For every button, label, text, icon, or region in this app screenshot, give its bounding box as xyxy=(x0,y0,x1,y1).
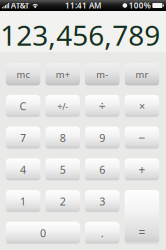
button[interactable]: ÷ xyxy=(85,95,120,117)
button[interactable]: 9 xyxy=(85,127,120,149)
staticText: × xyxy=(139,99,145,113)
staticText: 9 xyxy=(99,131,105,145)
staticText: + xyxy=(138,162,145,177)
staticText: 7 xyxy=(20,131,26,145)
staticText: m+ xyxy=(56,68,70,81)
staticText: +/- xyxy=(57,100,68,112)
staticText: 8 xyxy=(60,131,66,145)
staticText: 4 xyxy=(20,162,26,177)
staticText: 6 xyxy=(99,162,105,177)
button[interactable]: m- xyxy=(85,63,120,86)
button[interactable]: 6 xyxy=(85,158,120,181)
button[interactable]: C xyxy=(6,95,40,117)
staticText: . xyxy=(101,226,104,240)
staticText: m- xyxy=(96,68,108,81)
staticText: 0 xyxy=(40,226,46,240)
button[interactable]: 2 xyxy=(45,190,80,213)
staticText: 11:41 AM xyxy=(65,0,101,11)
staticText: = xyxy=(138,224,145,240)
staticText: AT&T xyxy=(11,0,30,11)
staticText: 2 xyxy=(60,194,66,208)
button[interactable]: 5 xyxy=(45,158,80,181)
staticText: mc xyxy=(17,68,30,81)
button[interactable]: mc xyxy=(6,63,40,86)
button[interactable]: + xyxy=(125,158,159,181)
staticText: ÷ xyxy=(99,98,106,114)
button[interactable]: 0 xyxy=(6,222,80,244)
staticText: 5 xyxy=(60,162,66,177)
staticText: − xyxy=(138,130,145,146)
staticText: 100% xyxy=(129,0,151,11)
button[interactable]: . xyxy=(85,222,120,244)
button[interactable]: − xyxy=(125,127,159,149)
button[interactable]: × xyxy=(125,95,159,117)
button[interactable]: 7 xyxy=(6,127,40,149)
staticText: mr xyxy=(135,68,148,81)
button[interactable]: mr xyxy=(125,63,159,86)
button[interactable]: +/- xyxy=(45,95,80,117)
staticText: C xyxy=(20,99,27,113)
button[interactable]: 1 xyxy=(6,190,40,213)
staticText: 3 xyxy=(99,194,105,208)
button[interactable]: = xyxy=(125,190,159,244)
button[interactable]: m+ xyxy=(45,63,80,86)
button[interactable]: 8 xyxy=(45,127,80,149)
button[interactable]: 3 xyxy=(85,190,120,213)
staticText: 1 xyxy=(20,194,26,208)
staticText: 123,456,789 xyxy=(0,16,160,54)
button[interactable]: 4 xyxy=(6,158,40,181)
